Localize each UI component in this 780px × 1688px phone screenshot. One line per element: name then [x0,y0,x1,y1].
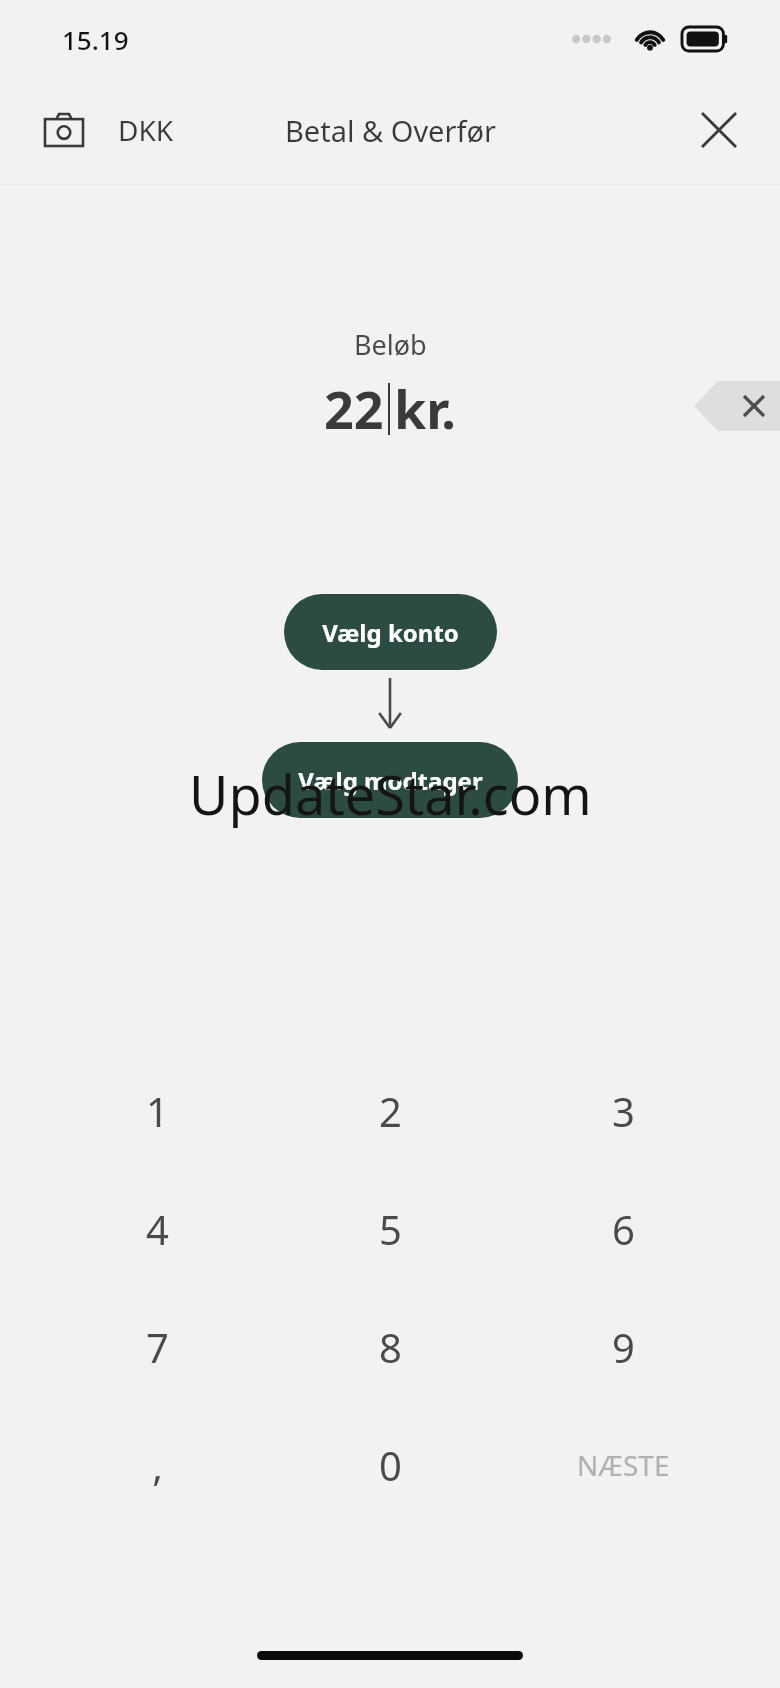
button[interactable]: NÆSTE [507,1406,740,1524]
button[interactable]: Close [686,97,752,163]
button[interactable]: 7 [40,1288,274,1406]
staticText: UpdateStar.com [189,757,592,831]
button[interactable]: Vælg konto [284,594,497,670]
staticText: NÆSTE [577,1446,670,1484]
button[interactable]: 5 [274,1170,507,1288]
button[interactable]: Scan with camera [32,98,96,162]
staticText: 3 [612,1084,635,1138]
staticText: , [152,1438,163,1492]
staticText: 1 [146,1084,169,1138]
staticText: 22 [324,373,384,444]
button[interactable]: Vælg modtager [262,742,518,818]
button[interactable]: DKK [110,103,182,157]
button[interactable]: 0 [274,1406,507,1524]
button[interactable]: , [40,1406,274,1524]
staticText: Beløb [354,326,427,363]
button[interactable]: 2 [274,1052,507,1170]
button[interactable]: 6 [507,1170,740,1288]
button[interactable]: 9 [507,1288,740,1406]
staticText: 0 [379,1438,402,1492]
button[interactable]: 8 [274,1288,507,1406]
staticText: 8 [379,1320,402,1374]
staticText: 2 [379,1084,402,1138]
button[interactable]: Clear amount [694,381,780,431]
staticText: kr. [394,373,456,444]
staticText: 6 [612,1202,635,1256]
staticText: 9 [612,1320,635,1374]
staticText: 7 [146,1320,169,1374]
staticText: Betal & Overfør [285,111,496,150]
staticText: 4 [146,1202,169,1256]
button[interactable]: 4 [40,1170,274,1288]
staticText: 15.19 [62,22,129,57]
staticText: 5 [379,1202,402,1256]
staticText: DKK [118,111,174,149]
staticText: Vælg konto [322,616,459,649]
button[interactable]: 1 [40,1052,274,1170]
staticText: Vælg modtager [298,764,483,797]
button[interactable]: 3 [507,1052,740,1170]
